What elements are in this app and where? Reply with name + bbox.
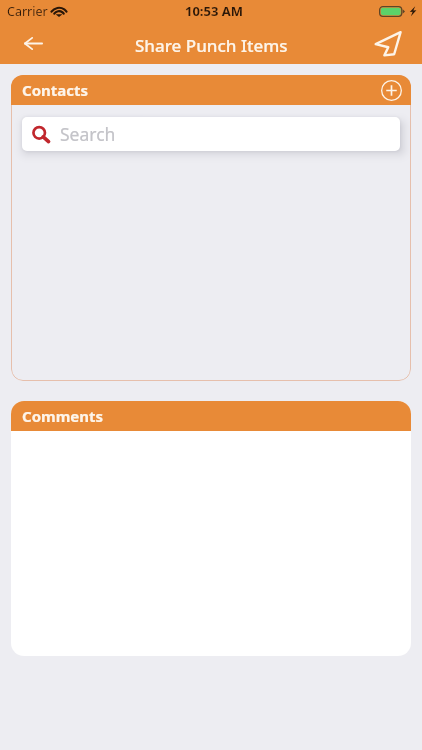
staticText: Contacts — [22, 80, 89, 100]
staticText: Carrier — [7, 3, 48, 20]
button[interactable]: Send — [370, 28, 406, 64]
staticText: Comments — [22, 406, 104, 426]
staticText: Search — [60, 122, 116, 146]
button[interactable]: Back — [17, 30, 49, 62]
staticText: Share Punch Items — [135, 34, 288, 57]
button[interactable]: Search — [22, 117, 400, 151]
button[interactable]: Add contact — [378, 77, 404, 103]
staticText: 10:53 AM — [185, 2, 244, 20]
